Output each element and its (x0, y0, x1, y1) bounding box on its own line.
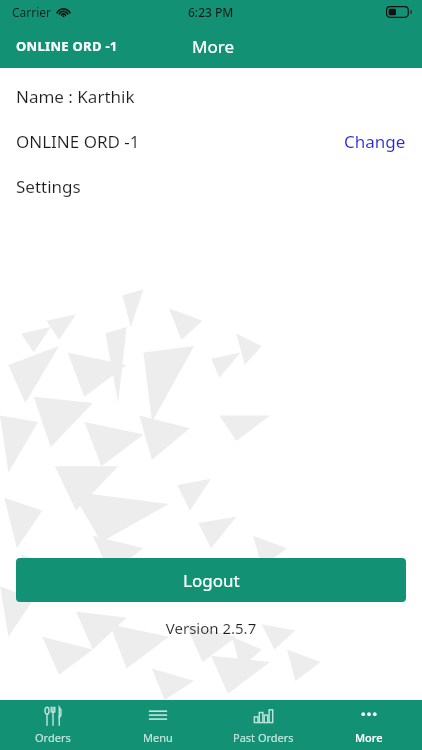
button[interactable]: Logout (16, 558, 406, 602)
staticText: Settings (16, 175, 81, 198)
staticText: Logout (183, 569, 240, 592)
staticText: 6:23 PM (188, 4, 234, 20)
staticText: ONLINE ORD -1 (16, 130, 140, 153)
staticText: Orders (35, 730, 71, 745)
staticText: Name : Karthik (16, 85, 135, 108)
button[interactable]: ONLINE ORD -1 (16, 37, 118, 55)
button[interactable]: More (316, 700, 422, 750)
staticText: Change (344, 130, 406, 153)
button[interactable]: Past Orders (210, 700, 316, 750)
staticText: Menu (143, 730, 173, 745)
button[interactable]: Change (344, 130, 406, 153)
staticText: Past Orders (233, 730, 294, 745)
button[interactable]: Orders (0, 700, 105, 750)
staticText: Carrier (12, 4, 52, 20)
button[interactable]: Name : Karthik (0, 74, 422, 119)
button[interactable]: ONLINE ORD -1 (0, 119, 422, 164)
staticText: Version 2.5.7 (0, 618, 422, 638)
staticText: More (355, 730, 383, 745)
staticText: More (192, 35, 234, 58)
button[interactable]: Menu (105, 700, 210, 750)
button[interactable]: Settings (0, 164, 422, 209)
